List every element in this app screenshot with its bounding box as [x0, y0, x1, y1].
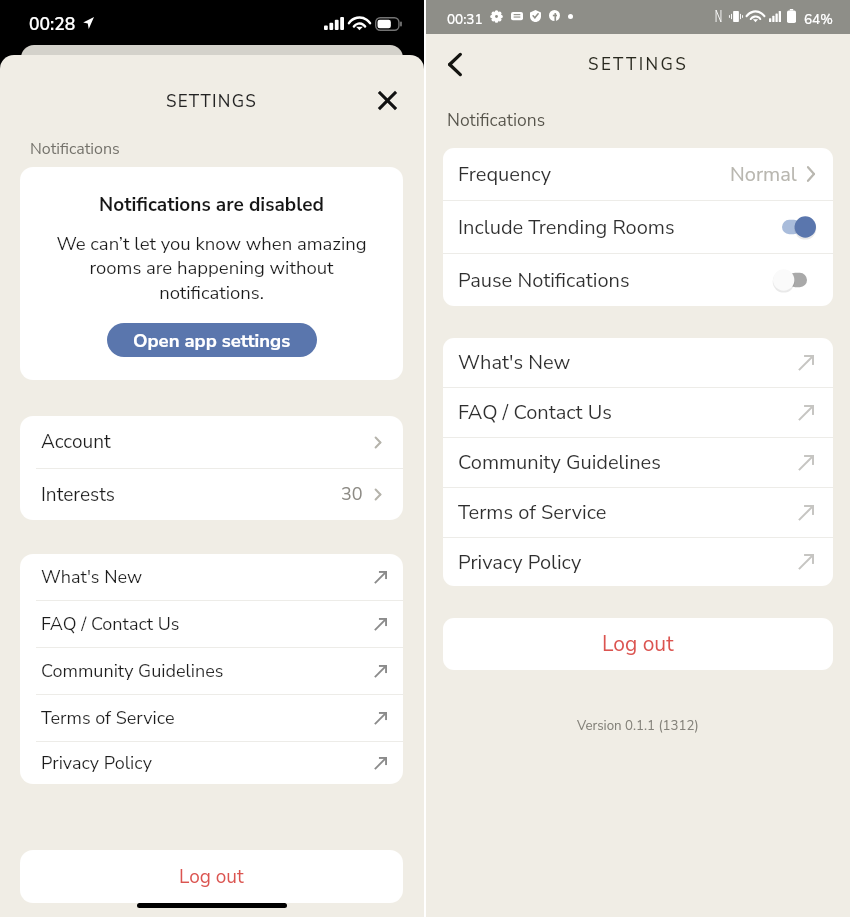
- staticText: What's New: [41, 565, 143, 590]
- button[interactable]: Interests: [20, 469, 403, 520]
- staticText: FAQ / Contact Us: [41, 612, 180, 637]
- button[interactable]: Log out: [443, 618, 833, 670]
- staticText: 30: [341, 482, 363, 507]
- button[interactable]: Terms of Service: [20, 695, 403, 741]
- staticText: SETTINGS: [166, 90, 258, 113]
- button[interactable]: FAQ / Contact Us: [443, 388, 833, 437]
- staticText: Notifications: [447, 108, 546, 132]
- button[interactable]: Include Trending Rooms: [443, 201, 833, 253]
- button[interactable]: What's New: [20, 554, 403, 600]
- staticText: Open app settings: [133, 328, 291, 353]
- button[interactable]: FAQ / Contact Us: [20, 601, 403, 647]
- staticText: Include Trending Rooms: [458, 214, 675, 241]
- staticText: Notifications: [30, 138, 120, 160]
- staticText: We can’t let you know when amazing rooms…: [42, 231, 381, 306]
- staticText: FAQ / Contact Us: [458, 399, 612, 426]
- staticText: Terms of Service: [41, 706, 175, 731]
- button[interactable]: Open app settings: [107, 323, 317, 357]
- button[interactable]: What's New: [443, 338, 833, 387]
- button[interactable]: Terms of Service: [443, 488, 833, 537]
- button[interactable]: Community Guidelines: [20, 648, 403, 694]
- staticText: Frequency: [458, 161, 551, 188]
- button[interactable]: Back: [436, 46, 473, 83]
- staticText: Terms of Service: [458, 499, 607, 526]
- staticText: Privacy Policy: [41, 751, 152, 776]
- staticText: Account: [41, 429, 111, 455]
- staticText: Notifications are disabled: [99, 192, 324, 218]
- button[interactable]: Log out: [20, 850, 403, 903]
- staticText: 64%: [804, 10, 833, 28]
- staticText: Pause Notifications: [458, 267, 630, 294]
- button[interactable]: Frequency: [443, 148, 833, 200]
- staticText: SETTINGS: [588, 53, 689, 76]
- staticText: Interests: [41, 482, 115, 508]
- staticText: Log out: [179, 864, 244, 890]
- staticText: 00:31: [447, 10, 483, 28]
- staticText: Community Guidelines: [458, 449, 661, 476]
- staticText: Community Guidelines: [41, 659, 224, 684]
- staticText: Privacy Policy: [458, 549, 582, 576]
- button[interactable]: Privacy Policy: [443, 538, 833, 586]
- button[interactable]: Community Guidelines: [443, 438, 833, 487]
- staticText: Version 0.1.1 (1312): [577, 717, 699, 735]
- staticText: What's New: [458, 349, 571, 376]
- staticText: Normal: [730, 161, 797, 188]
- button[interactable]: Account: [20, 416, 403, 468]
- button[interactable]: Pause Notifications: [443, 254, 833, 306]
- staticText: 00:28: [29, 12, 76, 36]
- staticText: Log out: [602, 630, 674, 659]
- button[interactable]: Privacy Policy: [20, 742, 403, 784]
- button[interactable]: Close: [369, 82, 405, 118]
